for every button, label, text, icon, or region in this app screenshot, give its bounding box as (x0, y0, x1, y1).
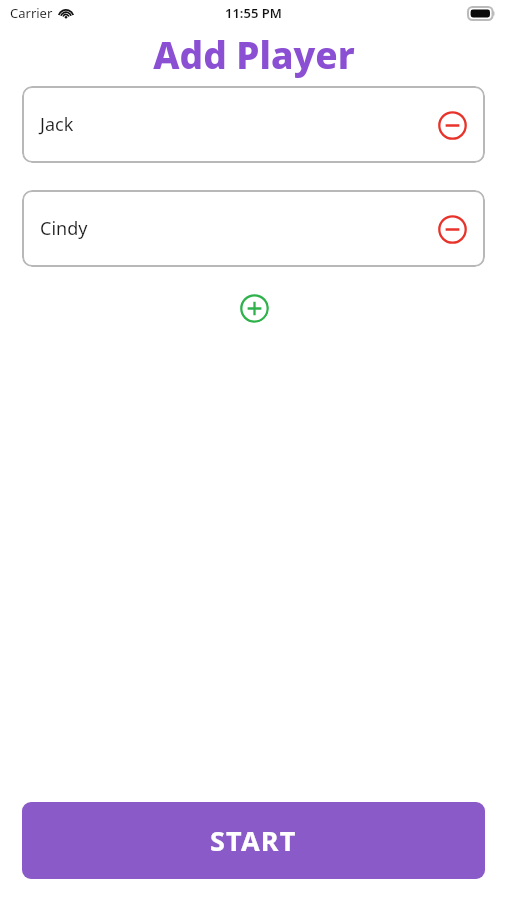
button[interactable]: START (22, 802, 485, 879)
button[interactable]: Add player (239, 293, 269, 323)
staticText: Jack (40, 112, 74, 137)
staticText: START (210, 822, 297, 859)
button[interactable]: Cindy (22, 190, 485, 267)
button[interactable]: Remove Jack (435, 108, 469, 142)
staticText: Cindy (40, 216, 88, 241)
staticText: Add Player (153, 29, 355, 79)
staticText: 11:55 PM (225, 4, 282, 22)
button[interactable]: Jack (22, 86, 485, 163)
button[interactable]: Remove Cindy (435, 212, 469, 246)
staticText: Carrier (10, 4, 53, 22)
